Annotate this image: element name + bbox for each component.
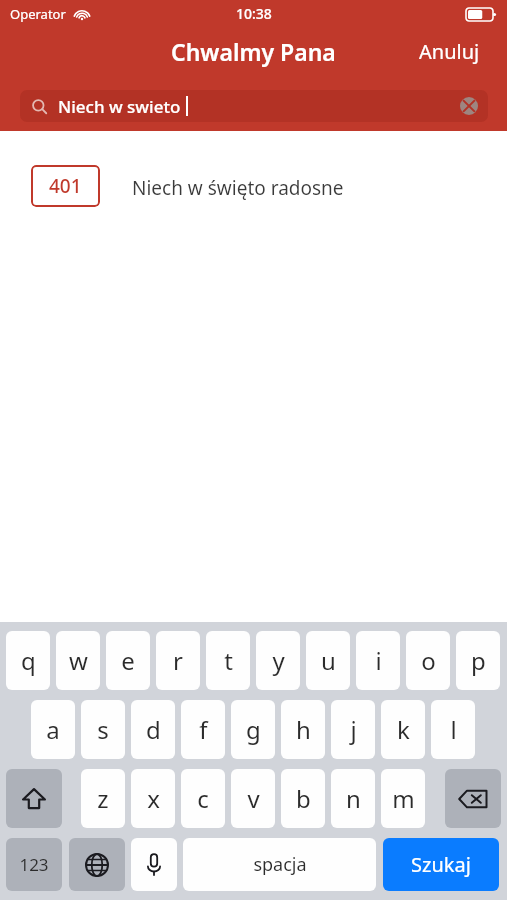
button[interactable]: o xyxy=(406,631,450,690)
button[interactable]: Anuluj xyxy=(415,36,484,67)
button[interactable]: c xyxy=(181,769,225,828)
staticText: j xyxy=(350,713,357,746)
button[interactable]: p xyxy=(456,631,500,690)
button[interactable]: Change keyboard xyxy=(69,838,125,891)
button[interactable]: Clear xyxy=(460,97,478,115)
button[interactable]: b xyxy=(281,769,325,828)
button[interactable]: e xyxy=(106,631,150,690)
staticText: Anuluj xyxy=(419,38,480,65)
staticText: r xyxy=(173,644,183,677)
staticText: y xyxy=(272,644,285,677)
button[interactable]: a xyxy=(31,700,75,759)
staticText: p xyxy=(471,644,486,677)
staticText: m xyxy=(392,782,415,815)
button[interactable]: q xyxy=(6,631,50,690)
staticText: b xyxy=(296,782,311,815)
button[interactable]: k xyxy=(381,700,425,759)
staticText: Operator xyxy=(10,5,66,23)
staticText: w xyxy=(69,644,88,677)
staticText: n xyxy=(346,782,361,815)
button[interactable]: m xyxy=(381,769,425,828)
button[interactable]: u xyxy=(306,631,350,690)
button[interactable]: spacja xyxy=(183,838,376,891)
staticText: 10:38 xyxy=(236,4,272,23)
button[interactable]: n xyxy=(331,769,375,828)
staticText: z xyxy=(97,782,109,815)
button[interactable]: x xyxy=(131,769,175,828)
staticText: l xyxy=(450,713,457,746)
staticText: c xyxy=(197,782,209,815)
button[interactable]: 123 xyxy=(6,838,62,891)
button[interactable]: Backspace xyxy=(445,769,501,828)
button[interactable]: i xyxy=(356,631,400,690)
button[interactable]: v xyxy=(231,769,275,828)
staticText: spacja xyxy=(253,852,307,877)
button[interactable]: 401 xyxy=(0,131,507,241)
button[interactable]: g xyxy=(231,700,275,759)
button[interactable]: y xyxy=(256,631,300,690)
button[interactable]: l xyxy=(431,700,475,759)
staticText: i xyxy=(375,644,382,677)
button[interactable]: f xyxy=(181,700,225,759)
staticText: Niech w święto radosne xyxy=(132,175,344,201)
button[interactable]: Niech w swieto xyxy=(20,90,488,122)
staticText: g xyxy=(246,713,261,746)
staticText: Szukaj xyxy=(411,851,471,878)
staticText: 123 xyxy=(19,853,49,876)
staticText: a xyxy=(46,713,60,746)
staticText: 401 xyxy=(49,173,82,199)
button[interactable]: w xyxy=(56,631,100,690)
staticText: u xyxy=(321,644,336,677)
staticText: o xyxy=(421,644,436,677)
button[interactable]: j xyxy=(331,700,375,759)
button[interactable]: t xyxy=(206,631,250,690)
button[interactable]: Shift xyxy=(6,769,62,828)
staticText: Niech w swieto xyxy=(58,95,181,118)
staticText: k xyxy=(397,713,410,746)
button[interactable]: d xyxy=(131,700,175,759)
button[interactable]: Dictate xyxy=(131,838,177,891)
staticText: t xyxy=(224,644,233,677)
staticText: s xyxy=(97,713,109,746)
button[interactable]: s xyxy=(81,700,125,759)
staticText: d xyxy=(146,713,161,746)
button[interactable]: Szukaj xyxy=(383,838,499,891)
button[interactable]: z xyxy=(81,769,125,828)
staticText: q xyxy=(21,644,36,677)
button[interactable]: r xyxy=(156,631,200,690)
staticText: e xyxy=(121,644,135,677)
staticText: x xyxy=(147,782,160,815)
staticText: h xyxy=(296,713,311,746)
staticText: Chwalmy Pana xyxy=(171,36,336,67)
button[interactable]: h xyxy=(281,700,325,759)
staticText: v xyxy=(247,782,260,815)
staticText: f xyxy=(199,713,208,746)
